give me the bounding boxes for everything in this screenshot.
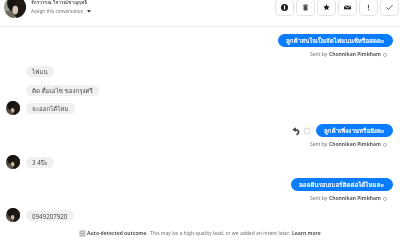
button[interactable]: ลูกค้าเพิ่งงานหรือยังคะ bbox=[316, 124, 393, 137]
button[interactable]: ไฟแน bbox=[26, 66, 54, 77]
button[interactable]: 3 4ปีะ bbox=[26, 157, 54, 168]
staticText: ลอดฝันรอบเบอร์ติดต่อได้ไหมคะ bbox=[299, 180, 385, 190]
staticText: 0949207920 bbox=[32, 212, 68, 220]
staticText: ติด ดื่มเอไซ ของกรุงศรี bbox=[32, 86, 93, 96]
button[interactable]: Reply bbox=[292, 127, 300, 135]
staticText: จักรวรรณ วิจารณ์ชาญฤทธิ์ bbox=[31, 0, 88, 6]
button[interactable]: Learn more bbox=[292, 230, 321, 237]
button[interactable]: React bbox=[304, 128, 310, 134]
staticText: Auto-detected outcome. bbox=[87, 230, 148, 237]
button[interactable]: Conversation info bbox=[275, 0, 294, 16]
staticText: ไฟแน bbox=[32, 67, 48, 77]
button[interactable]: จะออกได้ไหม bbox=[26, 103, 75, 114]
button[interactable]: Assign this conversation bbox=[31, 8, 91, 14]
staticText: Assign this conversation bbox=[31, 8, 84, 14]
staticText: Sent by bbox=[310, 195, 329, 202]
button[interactable]: ลูกค้าสนใจเป็นจัดไฟแนนซ์หรือสดคะ bbox=[278, 34, 393, 47]
button[interactable]: 0949207920 bbox=[26, 210, 74, 221]
staticText: Sent by bbox=[310, 141, 329, 148]
staticText: 3 4ปีะ bbox=[32, 158, 48, 168]
button[interactable]: ลอดฝันรอบเบอร์ติดต่อได้ไหมคะ bbox=[291, 178, 393, 191]
staticText: จะออกได้ไหม bbox=[32, 104, 69, 114]
button[interactable]: More options bbox=[359, 0, 378, 16]
button[interactable]: Star bbox=[317, 0, 336, 16]
staticText: Chonnikan Pimkham bbox=[329, 51, 381, 58]
button[interactable]: ติด ดื่มเอไซ ของกรุงศรี bbox=[26, 85, 99, 96]
staticText: Sent by bbox=[310, 51, 329, 58]
staticText: Chonnikan Pimkham bbox=[329, 195, 381, 202]
staticText: Chonnikan Pimkham bbox=[329, 141, 381, 148]
staticText: ลูกค้าสนใจเป็นจัดไฟแนนซ์หรือสดคะ bbox=[286, 36, 385, 46]
button[interactable]: Mark as done bbox=[380, 0, 399, 16]
staticText: ลูกค้าเพิ่งงานหรือยังคะ bbox=[324, 126, 385, 136]
staticText: This may be a high-quality lead, or we a… bbox=[150, 230, 290, 237]
button[interactable]: Delete bbox=[296, 0, 315, 16]
button[interactable]: Mark as unread bbox=[338, 0, 357, 16]
